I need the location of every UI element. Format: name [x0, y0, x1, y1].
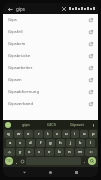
- staticText: z: [56, 131, 58, 137]
- button[interactable]: y: [16, 148, 24, 156]
- button[interactable]: .: [82, 157, 87, 165]
- staticText: f: [40, 140, 42, 146]
- staticText: l: [90, 140, 92, 146]
- staticText: q: [7, 131, 10, 137]
- staticText: o: [83, 131, 86, 137]
- button[interactable]: gips: [13, 120, 39, 129]
- staticText: i: [74, 131, 76, 137]
- staticText: Gips: [8, 17, 89, 23]
- staticText: Gipsset: [70, 122, 84, 127]
- staticText: gips: [22, 122, 30, 127]
- staticText: ?123: [6, 159, 12, 163]
- staticText: Gipsabformung: [8, 89, 89, 95]
- button[interactable]: o: [80, 130, 88, 138]
- staticText: ,: [16, 159, 18, 164]
- staticText: .: [84, 159, 86, 164]
- staticText: Gipsbrücke: [8, 53, 89, 59]
- button[interactable]: Gipsabformung: [3, 86, 98, 98]
- button[interactable]: d: [26, 139, 35, 147]
- button[interactable]: ?123: [5, 157, 13, 165]
- button[interactable]: s: [16, 139, 25, 147]
- staticText: c: [38, 149, 41, 155]
- staticText: w: [17, 131, 21, 137]
- button[interactable]: gips: [16, 3, 60, 14]
- button[interactable]: f: [36, 139, 45, 147]
- button[interactable]: ,: [14, 157, 19, 165]
- button[interactable]: a: [6, 139, 15, 147]
- staticText: u: [65, 131, 68, 137]
- staticText: y: [19, 149, 22, 155]
- staticText: g: [49, 140, 52, 146]
- button[interactable]: z: [53, 130, 61, 138]
- button[interactable]: p: [89, 130, 97, 138]
- button[interactable]: i: [71, 130, 79, 138]
- staticText: h: [59, 140, 62, 146]
- button[interactable]: j: [66, 139, 75, 147]
- button[interactable]: e: [24, 130, 33, 138]
- button[interactable]: Backspace: [85, 148, 97, 156]
- button[interactable]: Home: [46, 168, 55, 177]
- button[interactable]: m: [75, 148, 84, 156]
- button[interactable]: n: [65, 148, 74, 156]
- button[interactable]: Gipsbein: [3, 38, 98, 50]
- button[interactable]: c: [35, 148, 44, 156]
- staticText: GICS: [47, 122, 56, 127]
- button[interactable]: Gipsbrücke: [3, 50, 98, 62]
- button[interactable]: t: [44, 130, 52, 138]
- staticText: Gipsbein: [8, 41, 89, 47]
- button[interactable]: u: [62, 130, 70, 138]
- button[interactable]: Gipsarbeiter: [3, 62, 98, 74]
- button[interactable]: Voice input: [90, 122, 96, 128]
- button[interactable]: g: [46, 139, 55, 147]
- button[interactable]: b: [55, 148, 64, 156]
- button[interactable]: Clear: [60, 5, 68, 13]
- staticText: Gipsarbeiter: [8, 65, 89, 71]
- button[interactable]: x: [25, 148, 34, 156]
- button[interactable]: Emoji: [20, 157, 25, 165]
- button[interactable]: Gipsverband: [3, 98, 98, 110]
- button[interactable]: q: [4, 130, 13, 138]
- staticText: j: [70, 140, 72, 146]
- button[interactable]: Back: [20, 168, 29, 177]
- button[interactable]: Search: [5, 122, 11, 128]
- staticText: m: [78, 149, 82, 155]
- staticText: a: [9, 140, 12, 146]
- staticText: r: [38, 131, 40, 137]
- staticText: x: [28, 149, 31, 155]
- button[interactable]: Gips: [3, 14, 98, 26]
- button[interactable]: Recents: [72, 168, 81, 177]
- staticText: d: [29, 140, 32, 146]
- staticText: Gipsverband: [8, 101, 89, 107]
- button[interactable]: h: [56, 139, 65, 147]
- button[interactable]: w: [14, 130, 23, 138]
- button[interactable]: Back: [6, 5, 14, 13]
- button[interactable]: v: [45, 148, 54, 156]
- staticText: t: [47, 131, 49, 137]
- staticText: Gipsfell: [8, 29, 89, 35]
- staticText: v: [48, 149, 51, 155]
- staticText: b: [58, 149, 61, 155]
- button[interactable]: Gipsen: [3, 74, 98, 86]
- staticText: gips: [16, 6, 25, 12]
- staticText: k: [79, 140, 82, 146]
- staticText: s: [19, 140, 22, 146]
- staticText: n: [68, 149, 71, 155]
- button[interactable]: Gipsfell: [3, 26, 98, 38]
- staticText: e: [27, 131, 30, 137]
- button[interactable]: l: [86, 139, 95, 147]
- button[interactable]: Shift: [4, 148, 15, 156]
- button[interactable]: GICS: [39, 120, 64, 129]
- staticText: p: [92, 131, 95, 137]
- button[interactable]: Gipsset: [64, 120, 89, 129]
- button[interactable]: k: [76, 139, 85, 147]
- button[interactable]: Search: [88, 157, 96, 165]
- button[interactable]: r: [34, 130, 43, 138]
- staticText: Gipsen: [8, 77, 89, 83]
